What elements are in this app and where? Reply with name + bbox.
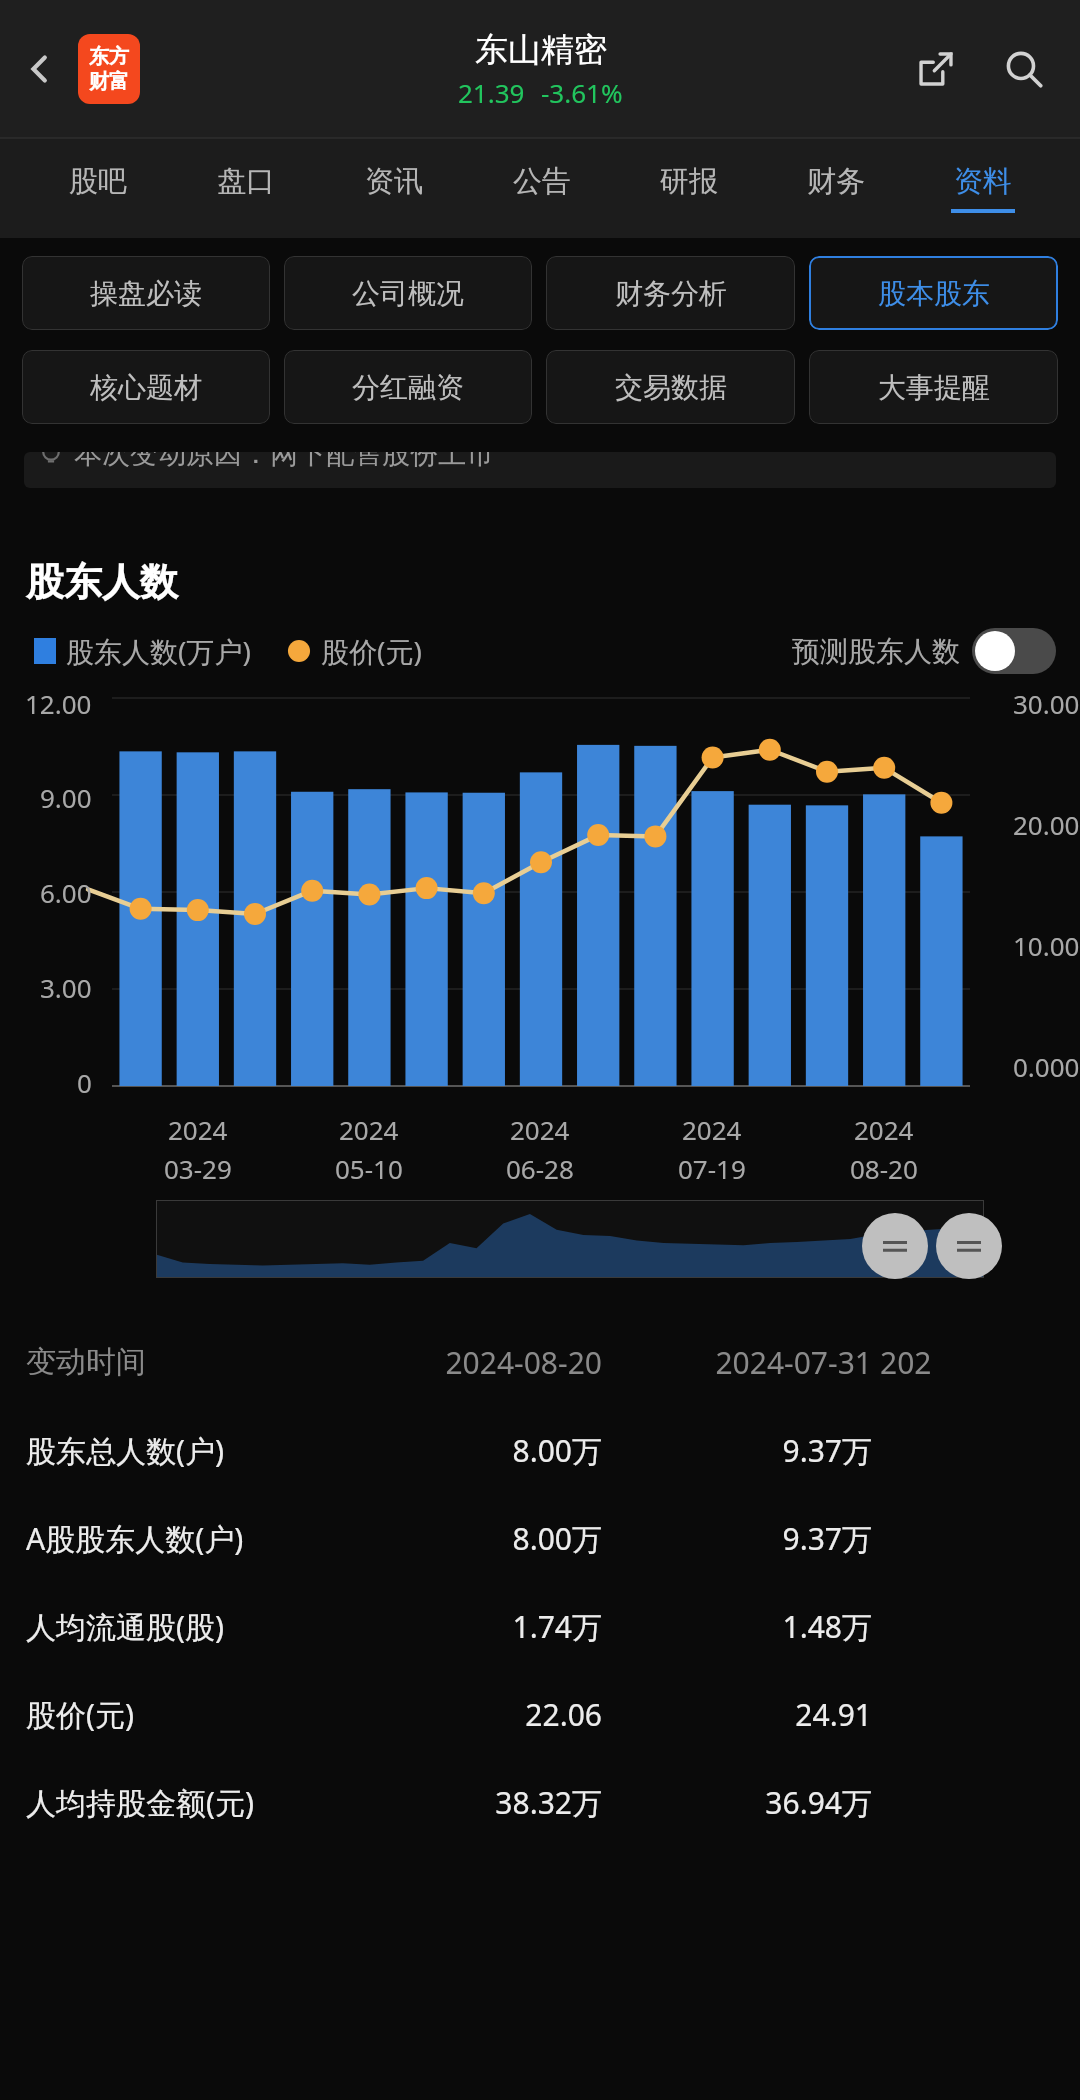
button[interactable]: 盘口 bbox=[172, 138, 320, 238]
staticText: 资讯 bbox=[365, 163, 423, 200]
staticText: 股本股东 bbox=[878, 276, 990, 311]
button[interactable]: 股价(元) bbox=[26, 1670, 1080, 1758]
staticText: 2024 bbox=[682, 1112, 742, 1147]
staticText: 21.39 bbox=[458, 75, 525, 110]
staticText: 公告 bbox=[513, 163, 571, 200]
staticText: 资料 bbox=[954, 163, 1012, 200]
staticText: 20.00 bbox=[1013, 807, 1080, 842]
button[interactable]: 核心题材 bbox=[22, 350, 270, 424]
staticText: 本次变动原因：网下配售股份上市 bbox=[74, 452, 494, 471]
staticText: 核心题材 bbox=[90, 370, 202, 405]
staticText: 8.00万 bbox=[336, 1518, 602, 1559]
staticText: 股东人数(万户) bbox=[66, 632, 251, 670]
staticText: 9.37万 bbox=[610, 1430, 872, 1471]
staticText: 0 bbox=[77, 1065, 92, 1100]
staticText: -3.61% bbox=[541, 75, 623, 110]
staticText: 公司概况 bbox=[352, 276, 464, 311]
staticText: 8.00万 bbox=[336, 1430, 602, 1471]
staticText: 变动时间 bbox=[26, 1343, 336, 1381]
staticText: 预测股东人数 bbox=[792, 634, 960, 669]
staticText: 2024-07-31 bbox=[610, 1342, 872, 1383]
button[interactable] bbox=[156, 1200, 984, 1278]
staticText: 9.00 bbox=[40, 780, 92, 815]
button[interactable]: Back bbox=[8, 37, 72, 101]
staticText: 东山精密 bbox=[475, 29, 607, 71]
staticText: 股东总人数(户) bbox=[26, 1430, 336, 1471]
staticText: 大事提醒 bbox=[878, 370, 990, 405]
button[interactable]: 公告 bbox=[468, 138, 615, 238]
staticText: 操盘必读 bbox=[90, 276, 202, 311]
button[interactable]: 人均持股金额(元) bbox=[26, 1758, 1080, 1846]
staticText: 人均流通股(股) bbox=[26, 1606, 336, 1647]
button[interactable]: 财务 bbox=[762, 138, 909, 238]
staticText: 股价(元) bbox=[321, 632, 422, 670]
staticText: 12.00 bbox=[25, 686, 92, 721]
staticText: 2024-08-20 bbox=[336, 1342, 602, 1383]
staticText: 2024 bbox=[510, 1112, 570, 1147]
staticText: 3.00 bbox=[40, 970, 92, 1005]
staticText: 202 bbox=[880, 1342, 1080, 1383]
staticText: 2024 bbox=[339, 1112, 399, 1147]
button[interactable]: 资讯 bbox=[320, 138, 468, 238]
button[interactable]: 交易数据 bbox=[546, 350, 795, 424]
staticText: 分红融资 bbox=[352, 370, 464, 405]
staticText: 2024 bbox=[168, 1112, 228, 1147]
staticText: 10.00 bbox=[1013, 928, 1080, 963]
staticText: 1.48万 bbox=[610, 1606, 872, 1647]
staticText: 30.00 bbox=[1013, 686, 1080, 721]
staticText: 22.06 bbox=[336, 1694, 602, 1735]
button[interactable]: 资料 bbox=[909, 138, 1056, 238]
button[interactable]: Share bbox=[902, 35, 970, 103]
button[interactable]: 公司概况 bbox=[284, 256, 532, 330]
staticText: A股股东人数(户) bbox=[26, 1518, 336, 1559]
button[interactable]: 变动时间 bbox=[26, 1318, 1080, 1406]
button[interactable]: 研报 bbox=[615, 138, 762, 238]
staticText: 2024 bbox=[854, 1112, 914, 1147]
staticText: 股吧 bbox=[69, 163, 127, 200]
staticText: 0.000 bbox=[1013, 1049, 1080, 1084]
button[interactable]: 大事提醒 bbox=[809, 350, 1058, 424]
staticText: 08-20 bbox=[850, 1151, 918, 1186]
button[interactable]: Range handle bbox=[936, 1213, 1002, 1279]
button[interactable]: Range handle bbox=[862, 1213, 928, 1279]
staticText: 股东人数 bbox=[26, 558, 178, 606]
button[interactable]: Search bbox=[990, 35, 1058, 103]
staticText: 9.37万 bbox=[610, 1518, 872, 1559]
staticText: 38.32万 bbox=[336, 1782, 602, 1823]
staticText: 36.94万 bbox=[610, 1782, 872, 1823]
staticText: 人均持股金额(元) bbox=[26, 1782, 336, 1823]
staticText: 财富 bbox=[89, 69, 129, 94]
button[interactable]: 人均流通股(股) bbox=[26, 1582, 1080, 1670]
staticText: 05-10 bbox=[335, 1151, 403, 1186]
button[interactable]: Forecast shareholders toggle bbox=[972, 628, 1056, 674]
button[interactable]: 股东总人数(户) bbox=[26, 1406, 1080, 1494]
staticText: 财务 bbox=[807, 163, 865, 200]
button[interactable]: A股股东人数(户) bbox=[26, 1494, 1080, 1582]
staticText: 03-29 bbox=[164, 1151, 232, 1186]
button[interactable]: 财务分析 bbox=[546, 256, 795, 330]
staticText: 股价(元) bbox=[26, 1694, 336, 1735]
staticText: 东方 bbox=[89, 44, 129, 69]
staticText: 07-19 bbox=[678, 1151, 746, 1186]
button[interactable]: 操盘必读 bbox=[22, 256, 270, 330]
staticText: 1.74万 bbox=[336, 1606, 602, 1647]
staticText: 财务分析 bbox=[615, 276, 727, 311]
button[interactable]: 股吧 bbox=[24, 138, 172, 238]
staticText: 06-28 bbox=[506, 1151, 574, 1186]
staticText: 6.00 bbox=[40, 875, 92, 910]
button[interactable]: 分红融资 bbox=[284, 350, 532, 424]
staticText: 盘口 bbox=[217, 163, 275, 200]
button[interactable]: 股本股东 bbox=[809, 256, 1058, 330]
staticText: 交易数据 bbox=[615, 370, 727, 405]
button[interactable]: East Money bbox=[78, 34, 140, 104]
staticText: 研报 bbox=[660, 163, 718, 200]
staticText: 24.91 bbox=[610, 1694, 872, 1735]
